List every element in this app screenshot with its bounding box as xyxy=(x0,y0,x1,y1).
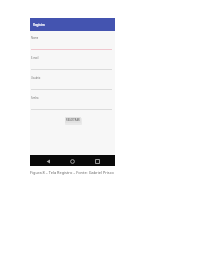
staticText: Registro xyxy=(33,23,45,27)
button[interactable]: REGISTRAR xyxy=(65,117,81,123)
button[interactable]: Home xyxy=(68,157,76,165)
staticText: REGISTRAR xyxy=(66,118,80,122)
button[interactable]: Recent apps xyxy=(93,157,101,165)
staticText: E-mail xyxy=(31,56,39,59)
staticText: Nome xyxy=(31,36,39,39)
staticText: Figura 8 – Tela Registro – Fonte: Gabrie… xyxy=(30,170,114,175)
staticText: Usuário xyxy=(31,76,41,79)
button[interactable]: Registro xyxy=(30,18,115,31)
button[interactable]: Back xyxy=(44,157,52,165)
staticText: Senha xyxy=(31,96,39,99)
